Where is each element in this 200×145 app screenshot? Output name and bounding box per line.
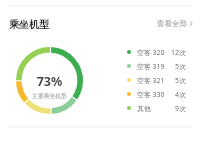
button[interactable]: 空客 320 (127, 45, 186, 59)
staticText: 乘坐机型 (9, 18, 49, 31)
staticText: 空客 330 (137, 90, 165, 99)
staticText: 查看全部 (157, 19, 187, 28)
staticText: 空客 321 (137, 76, 165, 85)
staticText: 73% (16, 73, 83, 90)
staticText: 其他 (137, 104, 151, 113)
button[interactable]: 空客 319 (127, 59, 186, 73)
button[interactable]: 其他 (127, 101, 186, 115)
staticText: 主要乘坐机型 (16, 92, 83, 99)
button[interactable]: 空客 330 (127, 87, 186, 101)
staticText: 5次 (175, 76, 186, 85)
staticText: 5次 (175, 62, 186, 71)
staticText: 空客 320 (137, 48, 165, 57)
button[interactable]: 查看全部 (157, 19, 193, 28)
staticText: 4次 (175, 90, 186, 99)
button[interactable]: 空客 321 (127, 73, 186, 87)
staticText: 12次 (171, 48, 186, 57)
staticText: 空客 319 (137, 62, 165, 71)
staticText: 9次 (175, 104, 186, 113)
button[interactable]: 乘坐机型 (9, 18, 49, 31)
